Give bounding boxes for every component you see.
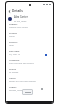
staticText: Project <box>9 31 17 34</box>
button[interactable]: Attachment <box>22 89 33 95</box>
staticText: Sam Lee and two others <box>9 62 34 65</box>
staticText: Priority <box>9 40 18 43</box>
staticText: Status <box>9 67 17 70</box>
button[interactable]: Alex Carter <box>8 15 28 23</box>
staticText: Orion <box>9 35 15 38</box>
staticText: Labels <box>9 85 17 88</box>
staticText: Due date <box>9 49 20 52</box>
staticText: Fri, Mar 14 <box>9 53 20 56</box>
staticText: Assignee <box>9 58 20 61</box>
button[interactable]: Back <box>7 9 12 14</box>
staticText: to me, team <box>14 20 27 23</box>
staticText: Design, Team <box>9 89 23 92</box>
staticText: Ready for the next release <box>9 80 36 83</box>
staticText: High <box>9 44 14 47</box>
staticText: In review <box>9 71 19 74</box>
staticText: Details <box>12 9 23 13</box>
staticText: Subject <box>9 22 18 25</box>
staticText: Notes <box>9 76 16 79</box>
staticText: Weekly sync notes <box>9 26 28 29</box>
staticText: Alex Carter <box>14 15 28 19</box>
button[interactable]: Profile <box>40 87 44 91</box>
